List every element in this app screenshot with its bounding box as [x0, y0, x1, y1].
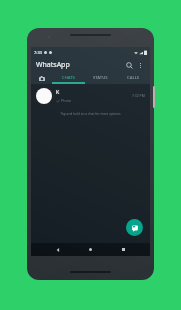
button[interactable]: New chat	[126, 219, 143, 236]
button[interactable]: Home	[84, 243, 97, 256]
button[interactable]: STATUS	[84, 72, 117, 84]
staticText: CHATS	[62, 75, 75, 81]
staticText: 7:32 PM	[132, 93, 145, 98]
button[interactable]: CALLS	[117, 72, 150, 84]
button[interactable]: Back	[51, 243, 64, 256]
button[interactable]: Recents	[117, 243, 130, 256]
button[interactable]: CHATS	[52, 72, 84, 84]
staticText: K	[56, 89, 60, 96]
staticText: Tap and hold on a chat for more options	[60, 112, 121, 116]
staticText: STATUS	[93, 75, 108, 81]
staticText: CALLS	[127, 75, 140, 81]
button[interactable]: Search	[123, 59, 135, 71]
button[interactable]: More options	[135, 60, 145, 70]
staticText: WhatsApp	[36, 60, 70, 70]
staticText: 7:33	[34, 50, 42, 55]
button[interactable]: K	[31, 84, 150, 107]
staticText: Photo	[61, 98, 72, 103]
button[interactable]: Camera	[31, 72, 52, 84]
